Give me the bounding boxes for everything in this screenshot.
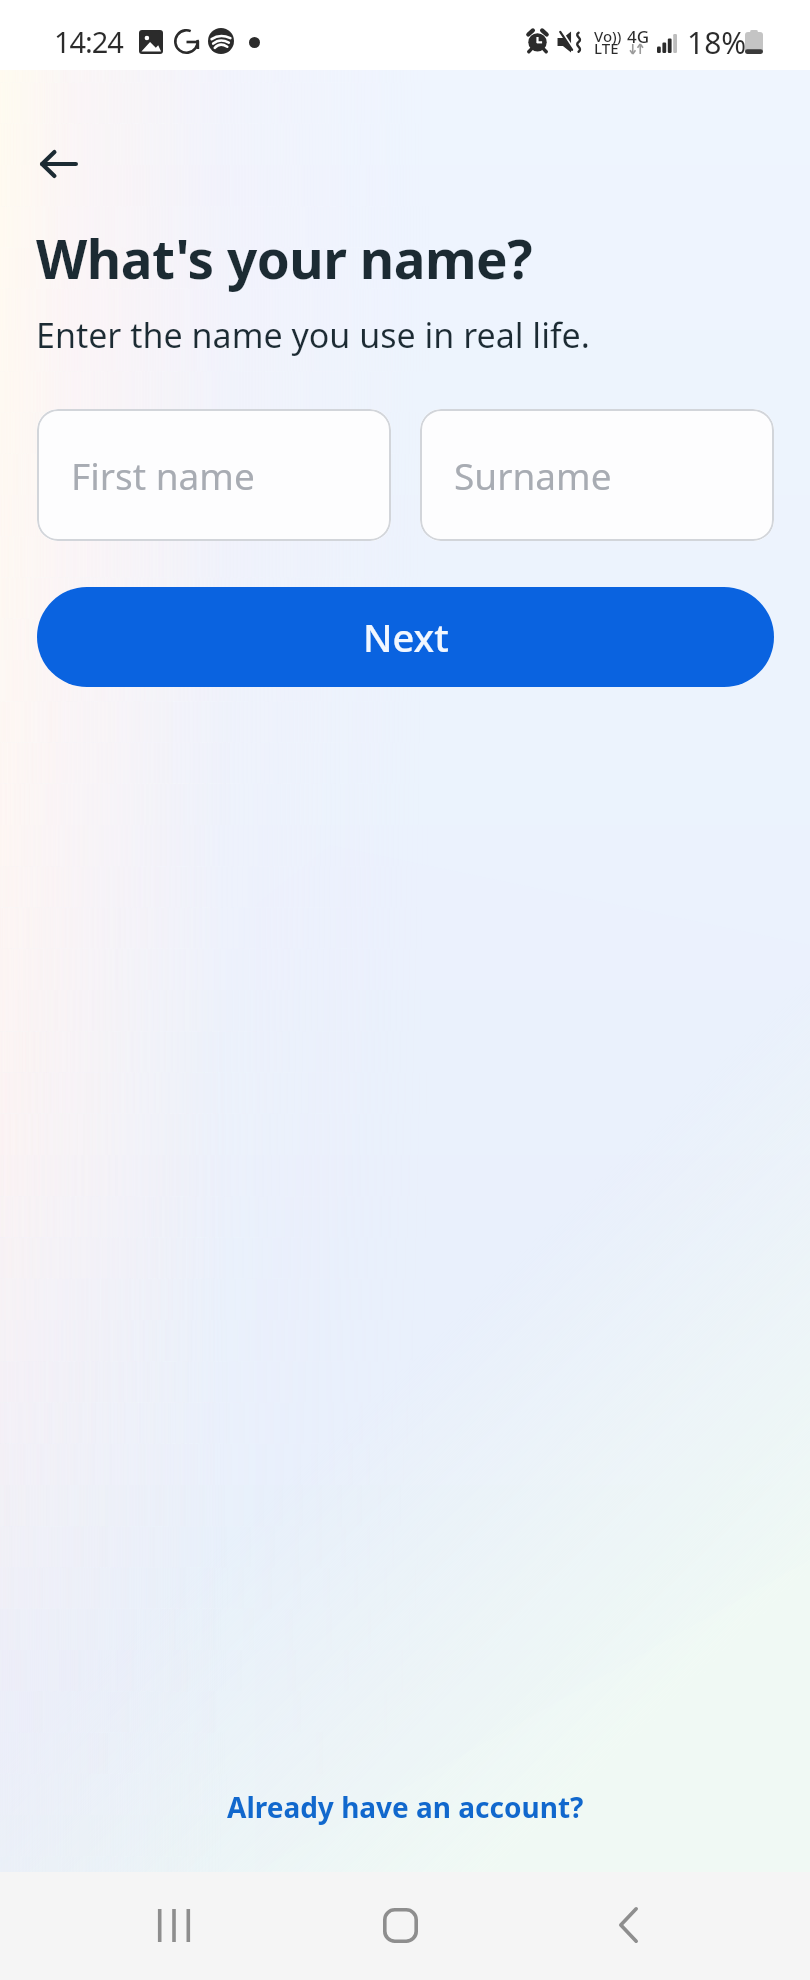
staticText: 14:24 <box>54 22 123 61</box>
staticText: 18% <box>687 22 747 63</box>
staticText: First name <box>71 450 255 500</box>
staticText: What's your name? <box>36 222 533 294</box>
button[interactable]: Next <box>37 587 774 687</box>
staticText: Already have an account? <box>227 1788 584 1826</box>
button[interactable]: Back <box>585 1882 671 1968</box>
staticText: Vo)) <box>594 26 622 46</box>
button[interactable]: Recent apps <box>131 1882 217 1968</box>
button[interactable]: Already have an account? <box>0 1771 810 1843</box>
button[interactable]: Home <box>357 1882 443 1968</box>
staticText: 4G <box>627 25 650 48</box>
staticText: Next <box>363 611 449 663</box>
button[interactable]: Back <box>16 121 102 207</box>
button[interactable]: First name <box>37 409 391 541</box>
staticText: LTE <box>594 38 619 58</box>
button[interactable]: Surname <box>420 409 774 541</box>
staticText: Surname <box>454 450 612 500</box>
staticText: Enter the name you use in real life. <box>36 312 590 358</box>
